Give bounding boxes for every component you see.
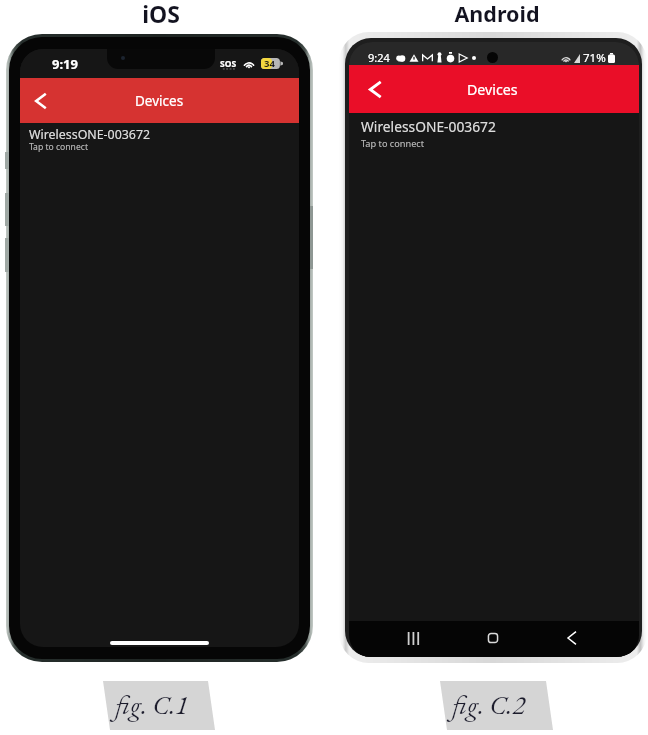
staticText: Devices bbox=[135, 92, 184, 110]
staticText: fig. C.1 bbox=[115, 687, 189, 722]
staticText: Android bbox=[447, 0, 547, 28]
staticText: Tap to connect bbox=[29, 141, 88, 153]
staticText: WirelessONE-003672 bbox=[29, 126, 151, 143]
staticText: WirelessONE-003672 bbox=[361, 117, 496, 136]
button[interactable]: Back bbox=[557, 623, 587, 653]
staticText: Tap to connect bbox=[361, 137, 425, 150]
staticText: iOS bbox=[111, 0, 211, 29]
button[interactable]: Recents bbox=[398, 623, 428, 653]
button[interactable]: Back bbox=[349, 65, 401, 113]
staticText: 34 bbox=[264, 57, 275, 70]
button[interactable]: Back bbox=[20, 78, 62, 123]
staticText: Devices bbox=[467, 80, 518, 99]
button[interactable]: WirelessONE-003672 bbox=[349, 113, 639, 149]
staticText: 71% bbox=[583, 50, 606, 66]
button[interactable]: WirelessONE-003672 bbox=[20, 123, 299, 155]
staticText: 9:24 bbox=[368, 50, 390, 65]
staticText: SOS bbox=[220, 58, 237, 70]
staticText: fig. C.2 bbox=[452, 687, 526, 722]
button[interactable]: Home bbox=[478, 623, 508, 653]
staticText: 9:19 bbox=[52, 55, 78, 73]
